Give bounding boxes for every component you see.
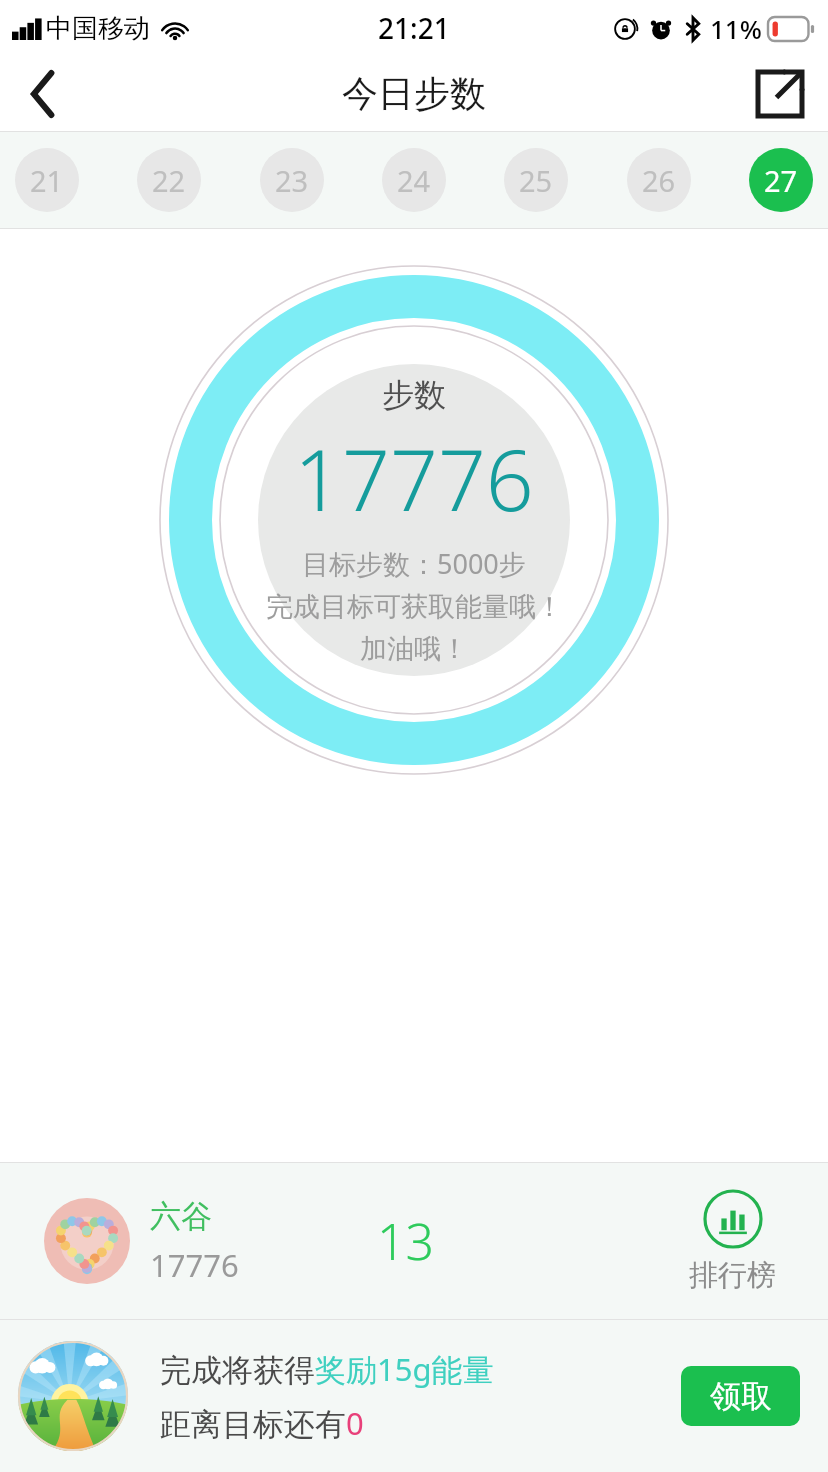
staticText: 25 [519,161,553,200]
staticText: 中国移动 [46,12,150,45]
staticText: 23 [275,161,309,200]
button[interactable]: 27 [749,148,813,212]
button[interactable]: 六谷 [0,1163,828,1319]
staticText: 17776 [294,421,534,535]
staticText: 13 [377,1207,435,1275]
staticText: 26 [642,161,676,200]
staticText: 21:21 [378,9,450,47]
staticText: 距离目标还有0 [160,1402,364,1444]
staticText: 目标步数：5000步 [302,545,526,582]
staticText: 11% [710,11,762,46]
button[interactable]: 排行榜 [689,1189,776,1294]
button[interactable]: Share [732,56,828,131]
button[interactable]: 25 [504,148,568,212]
staticText: 领取 [710,1377,772,1416]
staticText: 完成目标可获取能量哦！ [266,590,563,624]
button[interactable]: Back [0,56,86,131]
staticText: 今日步数 [342,71,486,116]
button[interactable]: 22 [137,148,201,212]
staticText: 步数 [382,375,446,415]
staticText: 完成将获得奖励15g能量 [160,1348,494,1390]
button[interactable]: 23 [260,148,324,212]
staticText: 17776 [150,1244,239,1286]
button[interactable]: 领取 [681,1366,800,1426]
button[interactable]: 24 [382,148,446,212]
button[interactable]: 21 [15,148,79,212]
staticText: 21 [30,161,64,200]
staticText: 24 [397,161,431,200]
staticText: 22 [152,161,186,200]
staticText: 加油哦！ [360,632,468,666]
staticText: 排行榜 [689,1257,776,1294]
staticText: 六谷 [150,1197,212,1236]
button[interactable]: 26 [627,148,691,212]
staticText: 27 [764,161,798,200]
